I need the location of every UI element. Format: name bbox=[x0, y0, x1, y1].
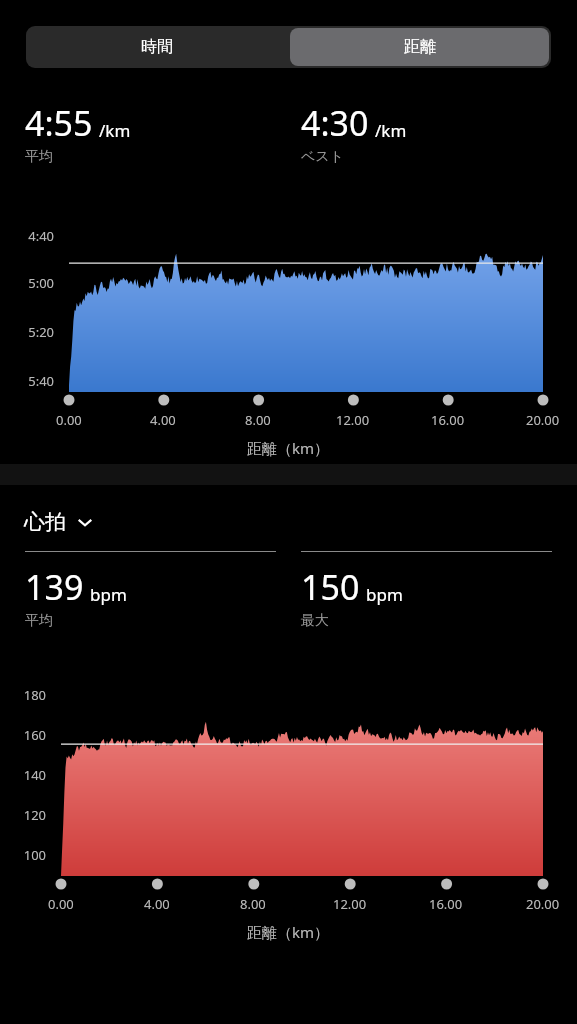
staticText: 20.00 bbox=[526, 895, 560, 913]
staticText: 0.00 bbox=[48, 895, 74, 913]
other: Expand heart rate bbox=[76, 513, 94, 531]
staticText: 距離（km） bbox=[247, 438, 330, 458]
staticText: 時間 bbox=[141, 37, 173, 57]
staticText: 0.00 bbox=[56, 411, 82, 429]
staticText: 5:00 bbox=[0, 274, 54, 292]
button[interactable]: 心拍 bbox=[22, 505, 96, 539]
staticText: 4:40 bbox=[0, 227, 54, 245]
staticText: 4.00 bbox=[150, 411, 176, 429]
staticText: 12.00 bbox=[333, 895, 367, 913]
button[interactable]: 距離 bbox=[290, 28, 549, 66]
staticText: 8.00 bbox=[240, 895, 266, 913]
staticText: 150 bbox=[301, 564, 360, 610]
staticText: 139 bbox=[25, 564, 84, 610]
staticText: 5:20 bbox=[0, 323, 54, 341]
staticText: 120 bbox=[0, 806, 46, 824]
staticText: 20.00 bbox=[526, 411, 560, 429]
staticText: 4:30 bbox=[301, 100, 369, 146]
staticText: 距離（km） bbox=[247, 922, 330, 942]
staticText: 160 bbox=[0, 726, 46, 744]
staticText: bpm bbox=[366, 583, 403, 606]
staticText: 平均 bbox=[25, 612, 53, 630]
staticText: 100 bbox=[0, 846, 46, 864]
staticText: 16.00 bbox=[429, 895, 463, 913]
staticText: ベスト bbox=[301, 148, 344, 166]
staticText: 140 bbox=[0, 766, 46, 784]
staticText: 平均 bbox=[25, 148, 53, 166]
staticText: 8.00 bbox=[245, 411, 271, 429]
staticText: 180 bbox=[0, 686, 46, 704]
staticText: 距離 bbox=[404, 37, 436, 57]
staticText: /km bbox=[99, 119, 131, 142]
staticText: 心拍 bbox=[24, 509, 66, 535]
staticText: 16.00 bbox=[431, 411, 465, 429]
staticText: 5:40 bbox=[0, 372, 54, 390]
staticText: 4.00 bbox=[144, 895, 170, 913]
staticText: 最大 bbox=[301, 612, 329, 630]
button[interactable]: 時間 bbox=[26, 26, 288, 68]
staticText: bpm bbox=[90, 583, 127, 606]
staticText: 12.00 bbox=[336, 411, 370, 429]
staticText: 4:55 bbox=[25, 100, 93, 146]
staticText: /km bbox=[375, 119, 407, 142]
